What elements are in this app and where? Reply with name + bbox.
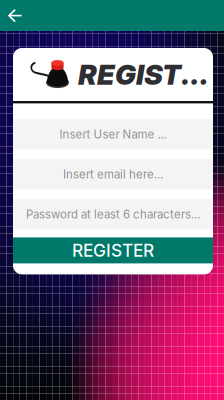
staticText: Password at least 6 characters... <box>26 207 200 221</box>
staticText: Insert email here... <box>63 167 163 181</box>
staticText: REGISTER <box>72 240 154 261</box>
button[interactable]: Password at least 6 characters... <box>13 199 213 229</box>
button[interactable]: REGISTER <box>13 237 213 263</box>
staticText: REGISTER <box>78 58 213 91</box>
button[interactable]: Insert User Name ... <box>13 119 213 149</box>
button[interactable]: Back <box>0 0 30 31</box>
staticText: Insert User Name ... <box>59 127 166 141</box>
button[interactable]: Insert email here... <box>13 159 213 189</box>
